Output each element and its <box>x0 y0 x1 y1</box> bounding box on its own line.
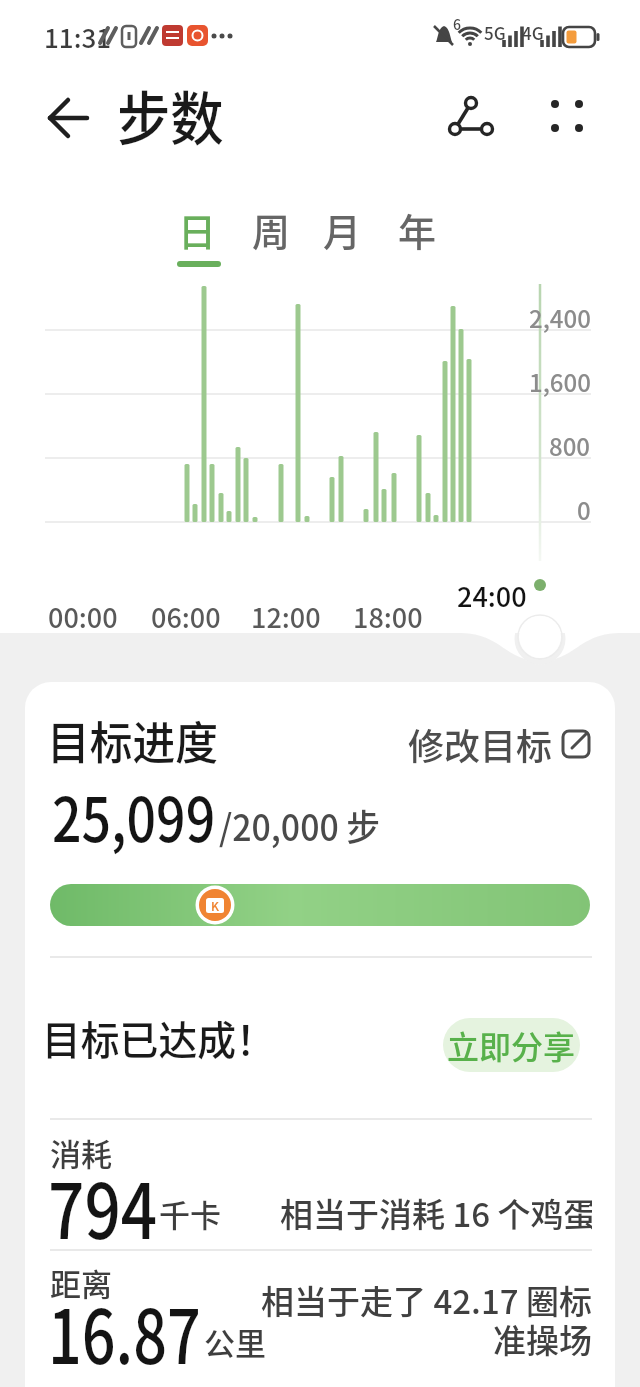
staticText: 距离 <box>50 1260 112 1305</box>
staticText: /20,000 步 <box>219 799 381 851</box>
staticText: 周 <box>252 202 291 257</box>
staticText: 消耗 <box>50 1130 112 1175</box>
button[interactable] <box>38 96 94 142</box>
staticText: 目标已达成！ <box>42 1009 275 1067</box>
staticText: 12:00 <box>251 597 321 636</box>
button[interactable]: 周 <box>231 188 311 271</box>
staticText: 步数 <box>117 73 225 157</box>
staticText: 794 <box>48 1151 157 1261</box>
staticText: 6 <box>453 14 461 34</box>
button[interactable]: 立即分享 <box>443 1018 580 1072</box>
staticText: 4G <box>522 20 544 45</box>
staticText: 目标进度 <box>47 708 219 773</box>
staticText: 日 <box>178 202 217 257</box>
staticText: K <box>211 897 219 914</box>
button[interactable]: 日 <box>157 188 237 271</box>
button[interactable] <box>540 90 596 142</box>
staticText: 18:00 <box>353 597 423 636</box>
staticText: 相当于走了 42.17 圈标 准操场 <box>261 1276 592 1363</box>
staticText: 立即分享 <box>447 1022 576 1068</box>
button[interactable]: 修改目标 <box>398 716 594 772</box>
staticText: 1,600 <box>529 364 591 399</box>
staticText: 5G <box>484 20 506 45</box>
button[interactable] <box>436 90 506 146</box>
staticText: 00:00 <box>48 597 118 636</box>
staticText: 0 <box>577 492 591 527</box>
staticText: 千卡 <box>159 1191 221 1236</box>
staticText: 2,400 <box>529 300 591 335</box>
button[interactable]: 年 <box>377 188 457 271</box>
staticText: 公里 <box>204 1319 266 1364</box>
staticText: 24:00 <box>457 576 527 615</box>
staticText: 16.87 <box>48 1277 201 1386</box>
staticText: 年 <box>398 202 437 257</box>
staticText: 800 <box>549 428 591 463</box>
staticText: 修改目标 <box>408 718 553 770</box>
staticText: 11:31 <box>44 18 112 56</box>
staticText: 月 <box>323 202 362 257</box>
button[interactable]: 月 <box>302 188 382 271</box>
staticText: 相当于消耗 16 个鸡蛋 <box>280 1189 592 1237</box>
staticText: 25,099 <box>52 771 216 859</box>
staticText: 06:00 <box>151 597 221 636</box>
